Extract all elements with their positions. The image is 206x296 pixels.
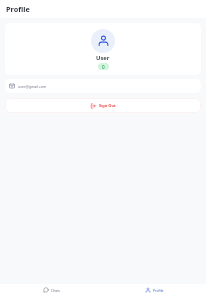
staticText: User: [96, 54, 110, 62]
button[interactable]: Sign Out: [5, 98, 201, 113]
button[interactable]: Profile: [103, 284, 206, 296]
button[interactable]: user@gmail.com: [5, 79, 201, 93]
staticText: user@gmail.com: [18, 84, 47, 89]
staticText: Sign Out: [99, 103, 116, 108]
button[interactable]: Chats: [0, 284, 103, 296]
staticText: Chats: [51, 288, 60, 293]
staticText: 0: [102, 64, 105, 70]
staticText: Profile: [153, 288, 164, 293]
staticText: Profile: [6, 4, 30, 14]
